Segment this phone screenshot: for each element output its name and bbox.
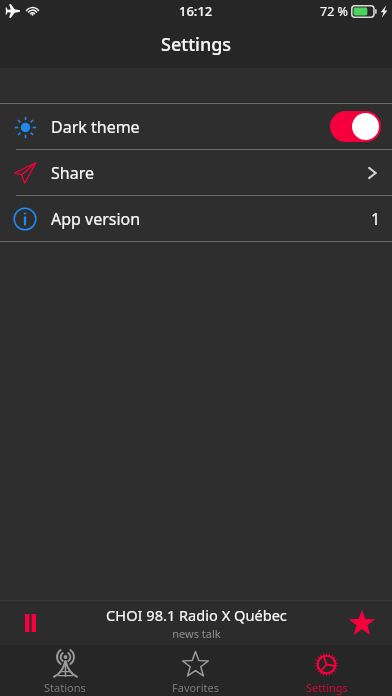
- staticText: App version: [51, 208, 141, 230]
- staticText: Share: [51, 162, 94, 184]
- staticText: Favorites: [172, 680, 219, 695]
- button[interactable]: App version: [0, 196, 392, 241]
- button[interactable]: Favorite: [332, 601, 392, 645]
- other: Open: [363, 164, 381, 182]
- staticText: 16:12: [179, 2, 213, 20]
- button[interactable]: Share: [0, 150, 392, 195]
- staticText: 1: [371, 208, 381, 230]
- button[interactable]: Dark theme toggle: [330, 111, 381, 142]
- staticText: Settings: [161, 32, 232, 57]
- button[interactable]: Pause: [0, 601, 60, 645]
- button[interactable]: Favorites: [130, 645, 261, 696]
- staticText: Dark theme: [51, 116, 140, 138]
- staticText: Stations: [44, 680, 86, 695]
- staticText: CHOI 98.1 Radio X Québec: [106, 605, 287, 625]
- staticText: Settings: [306, 680, 348, 695]
- button[interactable]: Dark theme: [0, 104, 392, 149]
- staticText: 72 %: [320, 3, 348, 20]
- button[interactable]: Settings: [261, 645, 392, 696]
- button[interactable]: Stations: [0, 645, 130, 696]
- staticText: news talk: [172, 626, 221, 641]
